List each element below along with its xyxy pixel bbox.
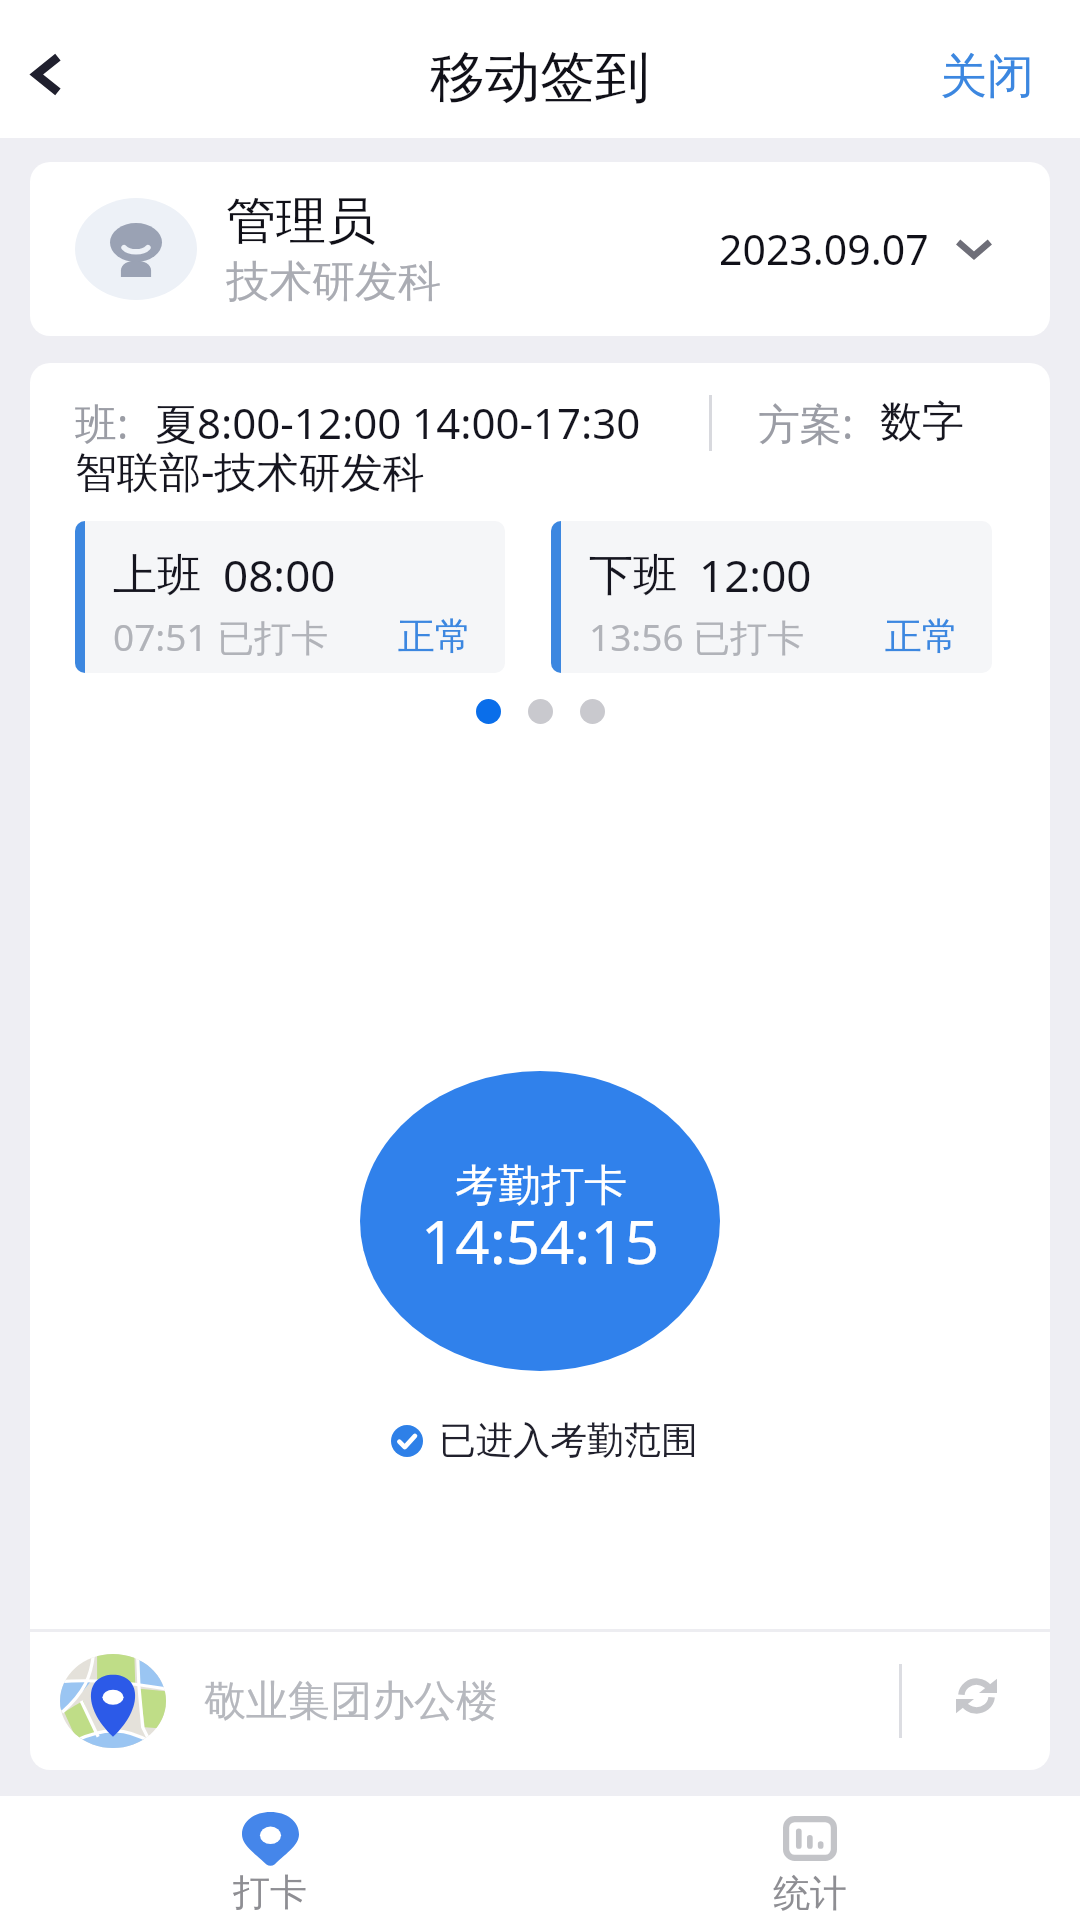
staticText: 已进入考勤范围 <box>439 1417 698 1464</box>
button[interactable]: 考勤打卡 <box>360 1071 720 1371</box>
staticText: 方案: <box>758 394 854 451</box>
staticText: 13:56 已打卡 <box>589 611 805 662</box>
button[interactable]: 管理员 <box>30 162 1050 336</box>
staticText: 12:00 <box>699 545 812 605</box>
button[interactable]: Page 2 <box>528 699 553 724</box>
staticText: 正常 <box>398 613 472 660</box>
button[interactable]: 打卡 <box>0 1796 540 1920</box>
staticText: 统计 <box>773 1870 847 1917</box>
staticText: 07:51 已打卡 <box>113 611 329 662</box>
staticText: 2023.09.07 <box>719 221 929 277</box>
button[interactable]: 关闭 <box>892 18 1080 121</box>
staticText: 上班 <box>113 548 201 603</box>
staticText: 下班 <box>589 548 677 603</box>
staticText: 夏8:00-12:00 14:00-17:30 <box>155 394 641 451</box>
staticText: 班: <box>75 394 129 451</box>
staticText: 技术研发科 <box>226 255 441 309</box>
button[interactable]: Refresh location <box>902 1632 1050 1770</box>
button[interactable]: 下班 <box>551 521 992 673</box>
staticText: 敬业集团办公楼 <box>204 1675 498 1728</box>
button[interactable]: 2023.09.07 <box>719 221 992 277</box>
staticText: 智联部-技术研发科 <box>75 442 425 499</box>
staticText: 考勤打卡 <box>455 1159 627 1213</box>
staticText: 打卡 <box>233 1869 307 1916</box>
button[interactable]: Page 1 <box>476 699 501 724</box>
button[interactable]: Back <box>6 23 98 115</box>
button[interactable]: 统计 <box>540 1796 1080 1920</box>
button[interactable]: Page 3 <box>580 699 605 724</box>
staticText: 08:00 <box>223 545 336 605</box>
staticText: 14:54:15 <box>421 1200 660 1282</box>
staticText: 管理员 <box>226 190 376 253</box>
staticText: 移动签到 <box>430 43 650 112</box>
staticText: 数字 <box>880 396 964 449</box>
button[interactable]: 上班 <box>75 521 505 673</box>
staticText: 正常 <box>885 613 959 660</box>
staticText: 关闭 <box>940 47 1034 106</box>
